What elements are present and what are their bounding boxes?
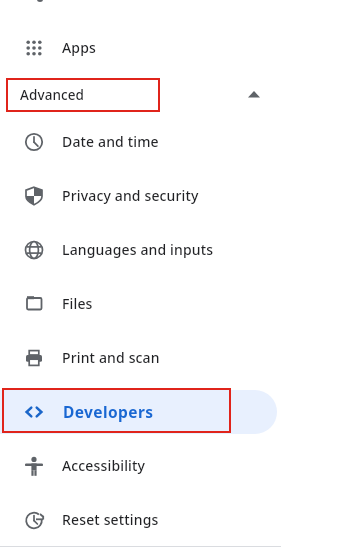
button[interactable]: Accessibility xyxy=(0,439,280,493)
button[interactable]: Files xyxy=(0,277,280,331)
button[interactable]: Print and scan xyxy=(0,331,280,385)
button[interactable]: Languages and inputs xyxy=(0,223,280,277)
staticText: Advanced xyxy=(20,86,85,104)
staticText: Date and time xyxy=(62,132,159,151)
button[interactable]: Apps xyxy=(0,21,280,75)
staticText: Languages and inputs xyxy=(62,240,214,259)
button[interactable]: Reset settings xyxy=(0,493,280,547)
button[interactable]: Privacy and security xyxy=(0,169,280,223)
staticText: Print and scan xyxy=(62,348,160,367)
button[interactable] xyxy=(0,390,277,434)
staticText: Developers xyxy=(63,401,154,422)
staticText: Privacy and security xyxy=(62,186,199,205)
staticText: Accessibility xyxy=(62,456,146,475)
button[interactable]: Advanced xyxy=(0,78,280,112)
staticText: Reset settings xyxy=(62,510,159,529)
button[interactable]: Date and time xyxy=(0,115,280,169)
staticText: Apps xyxy=(62,38,96,57)
staticText: Files xyxy=(62,294,93,313)
